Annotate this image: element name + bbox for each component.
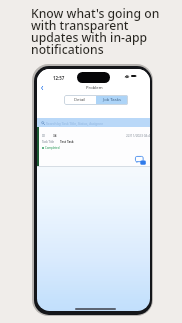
staticText: Task Title — [42, 140, 55, 144]
staticText: 12:57 — [53, 75, 65, 81]
staticText: Detail — [74, 97, 86, 103]
staticText: Completed — [45, 146, 60, 150]
staticText: ID — [42, 134, 45, 138]
staticText: 22/11/2023 04:46 PM — [126, 134, 150, 138]
button[interactable]: Search by Task Title, Status, Assignee — [37, 118, 150, 127]
staticText: 34 — [53, 134, 57, 138]
button[interactable]: Detail — [64, 95, 96, 105]
staticText: Search by Task Title, Status, Assignee — [46, 121, 104, 125]
button[interactable]: Job Tasks — [96, 95, 128, 105]
staticText: Job Tasks — [103, 97, 121, 103]
staticText: Know what's going on with transparent up… — [31, 5, 160, 58]
button[interactable]: ID — [37, 127, 150, 167]
staticText: Test Task — [60, 140, 74, 144]
staticText: Problem — [86, 85, 103, 91]
button[interactable]: Comments — [135, 156, 146, 165]
button[interactable]: Back — [38, 83, 45, 92]
